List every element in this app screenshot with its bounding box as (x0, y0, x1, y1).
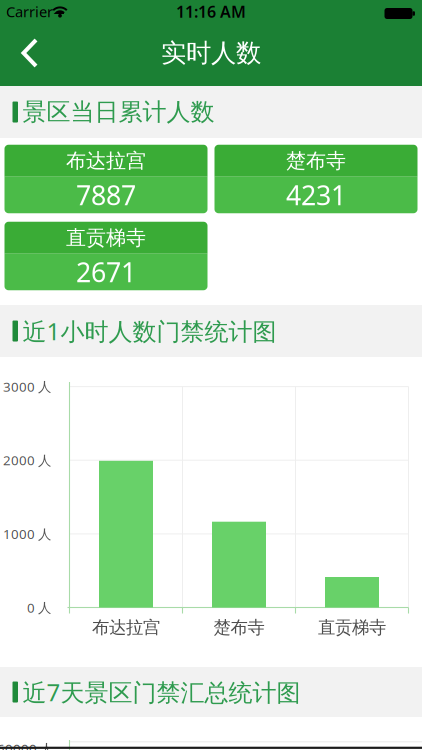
staticText: 布达拉宫 (66, 148, 146, 173)
staticText: 4231 (286, 177, 346, 213)
staticText: 3000 人 (3, 378, 51, 395)
staticText: 2671 (76, 254, 136, 290)
staticText: 11:16 AM (176, 1, 246, 22)
staticText: Carrier (6, 2, 53, 21)
staticText: 直贡梯寺 (66, 225, 146, 250)
staticText: 布达拉宫 (92, 617, 160, 638)
button[interactable]: Back (0, 31, 44, 75)
staticText: 楚布寺 (213, 617, 264, 638)
staticText: 2000 人 (3, 451, 51, 469)
staticText: 1000 人 (3, 525, 51, 543)
staticText: 楚布寺 (286, 148, 346, 173)
staticText: 实时人数 (161, 37, 261, 68)
staticText: 直贡梯寺 (318, 617, 386, 638)
staticText: 景区当日累计人数 (22, 97, 214, 127)
staticText: 近7天景区门禁汇总统计图 (22, 676, 300, 708)
staticText: 0 人 (27, 599, 51, 616)
staticText: 60000 人 (0, 740, 53, 750)
staticText: 7887 (76, 177, 136, 213)
staticText: 近1小时人数门禁统计图 (22, 315, 276, 347)
